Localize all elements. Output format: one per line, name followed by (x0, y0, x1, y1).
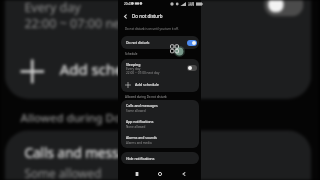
button[interactable]: Calls and messages (121, 100, 199, 116)
staticText: Add schedule (135, 82, 160, 87)
button[interactable]: Do not disturb (121, 36, 199, 49)
button[interactable]: Back (178, 168, 189, 179)
staticText: Some allowed (24, 166, 103, 180)
staticText: None allowed (126, 125, 146, 129)
button[interactable]: Add schedule (121, 77, 199, 92)
staticText: Every day (126, 67, 141, 71)
staticText: Do not disturb (126, 40, 150, 45)
staticText: Every day (24, 1, 83, 16)
button[interactable]: Recents (131, 168, 142, 179)
button[interactable]: Add schedule (5, 40, 311, 99)
staticText: Do not disturb (132, 13, 163, 19)
staticText: Allowed during Do not disturb (20, 111, 186, 126)
staticText: Alarms and sounds (126, 135, 157, 140)
button[interactable]: Sleeping (121, 59, 199, 77)
button[interactable]: Calls and messages (5, 130, 311, 180)
staticText: App notifications (126, 119, 154, 124)
staticText: 34% (188, 2, 194, 6)
staticText: Add schedule (60, 60, 158, 79)
staticText: Allowed during Do not disturb (125, 95, 167, 99)
button[interactable]: Turn on (264, 0, 303, 16)
button[interactable]: Turn on (187, 65, 197, 71)
staticText: Sleeping (126, 62, 141, 67)
staticText: Alarms and media (126, 141, 152, 145)
staticText: 22:00 ~ 07:00 next day (126, 71, 160, 75)
staticText: Calls and messages (24, 142, 150, 162)
button[interactable]: Turn off (187, 40, 197, 46)
staticText: Calls and messages (126, 103, 158, 108)
staticText: Do not disturb is on until you turn it o… (125, 27, 197, 31)
button[interactable]: App notifications (121, 116, 199, 132)
button[interactable]: Sleeping (5, 0, 311, 40)
staticText: 20:43 (124, 2, 132, 6)
staticText: 22:00 ~ 07:00 next day (24, 16, 158, 32)
staticText: Schedule (125, 52, 138, 56)
button[interactable]: Home (154, 168, 165, 179)
button[interactable]: Navigate up (120, 11, 131, 22)
button[interactable]: Alarms and sounds (121, 132, 199, 148)
staticText: Hide notifications (126, 156, 155, 161)
button[interactable]: Hide notifications (121, 152, 199, 164)
staticText: Some allowed (126, 109, 146, 113)
